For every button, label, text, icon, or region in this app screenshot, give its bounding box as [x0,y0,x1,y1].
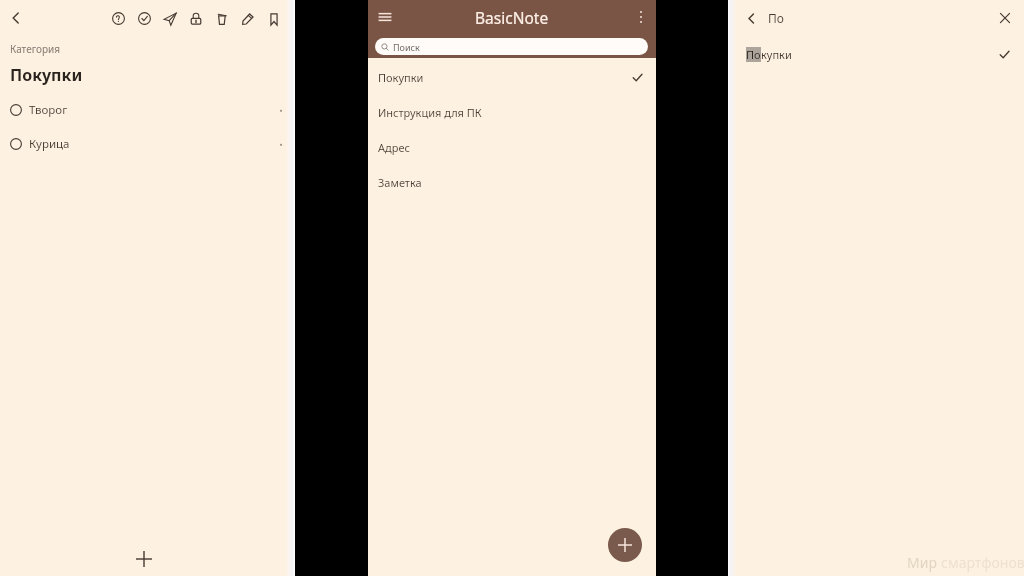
button[interactable]: Add item [128,543,160,575]
button[interactable]: Покупки [368,60,656,95]
button[interactable]: Close [992,5,1018,31]
button[interactable]: Mark done [131,6,157,31]
button[interactable]: Курица [0,127,288,161]
button[interactable]: Help [105,6,131,31]
button[interactable]: Send [157,6,183,31]
staticText: Покупки [10,64,83,86]
staticText: Поиск [393,41,420,53]
staticText: Адрес [378,140,410,155]
button[interactable]: Add note [608,528,642,562]
button[interactable]: Delete [209,6,235,31]
staticText: Заметка [378,175,422,190]
button[interactable]: Back [0,2,32,34]
button[interactable]: Menu [368,0,402,34]
button[interactable]: Адрес [368,130,656,165]
staticText: купки [761,47,792,62]
button[interactable]: Bookmark [261,6,287,31]
button[interactable]: Edit [235,6,261,31]
button[interactable]: Инструкция для ПК [368,95,656,130]
button[interactable]: По [728,36,1024,72]
staticText: Курица [29,136,70,152]
button[interactable]: Поиск [375,38,648,55]
staticText: Творог [29,102,68,118]
staticText: BasicNote [475,7,549,28]
button[interactable]: Заметка [368,165,656,200]
staticText: Мир [907,553,941,572]
button[interactable]: Творог [0,93,288,127]
staticText: По [768,10,784,26]
button[interactable]: More options [626,0,656,34]
staticText: По [746,47,761,62]
staticText: Категория [10,42,60,56]
button[interactable]: Lock [183,6,209,31]
staticText: Покупки [378,70,424,85]
staticText: смартфонов [941,553,1024,572]
staticText: Инструкция для ПК [378,105,482,120]
button[interactable]: Back [740,7,762,29]
